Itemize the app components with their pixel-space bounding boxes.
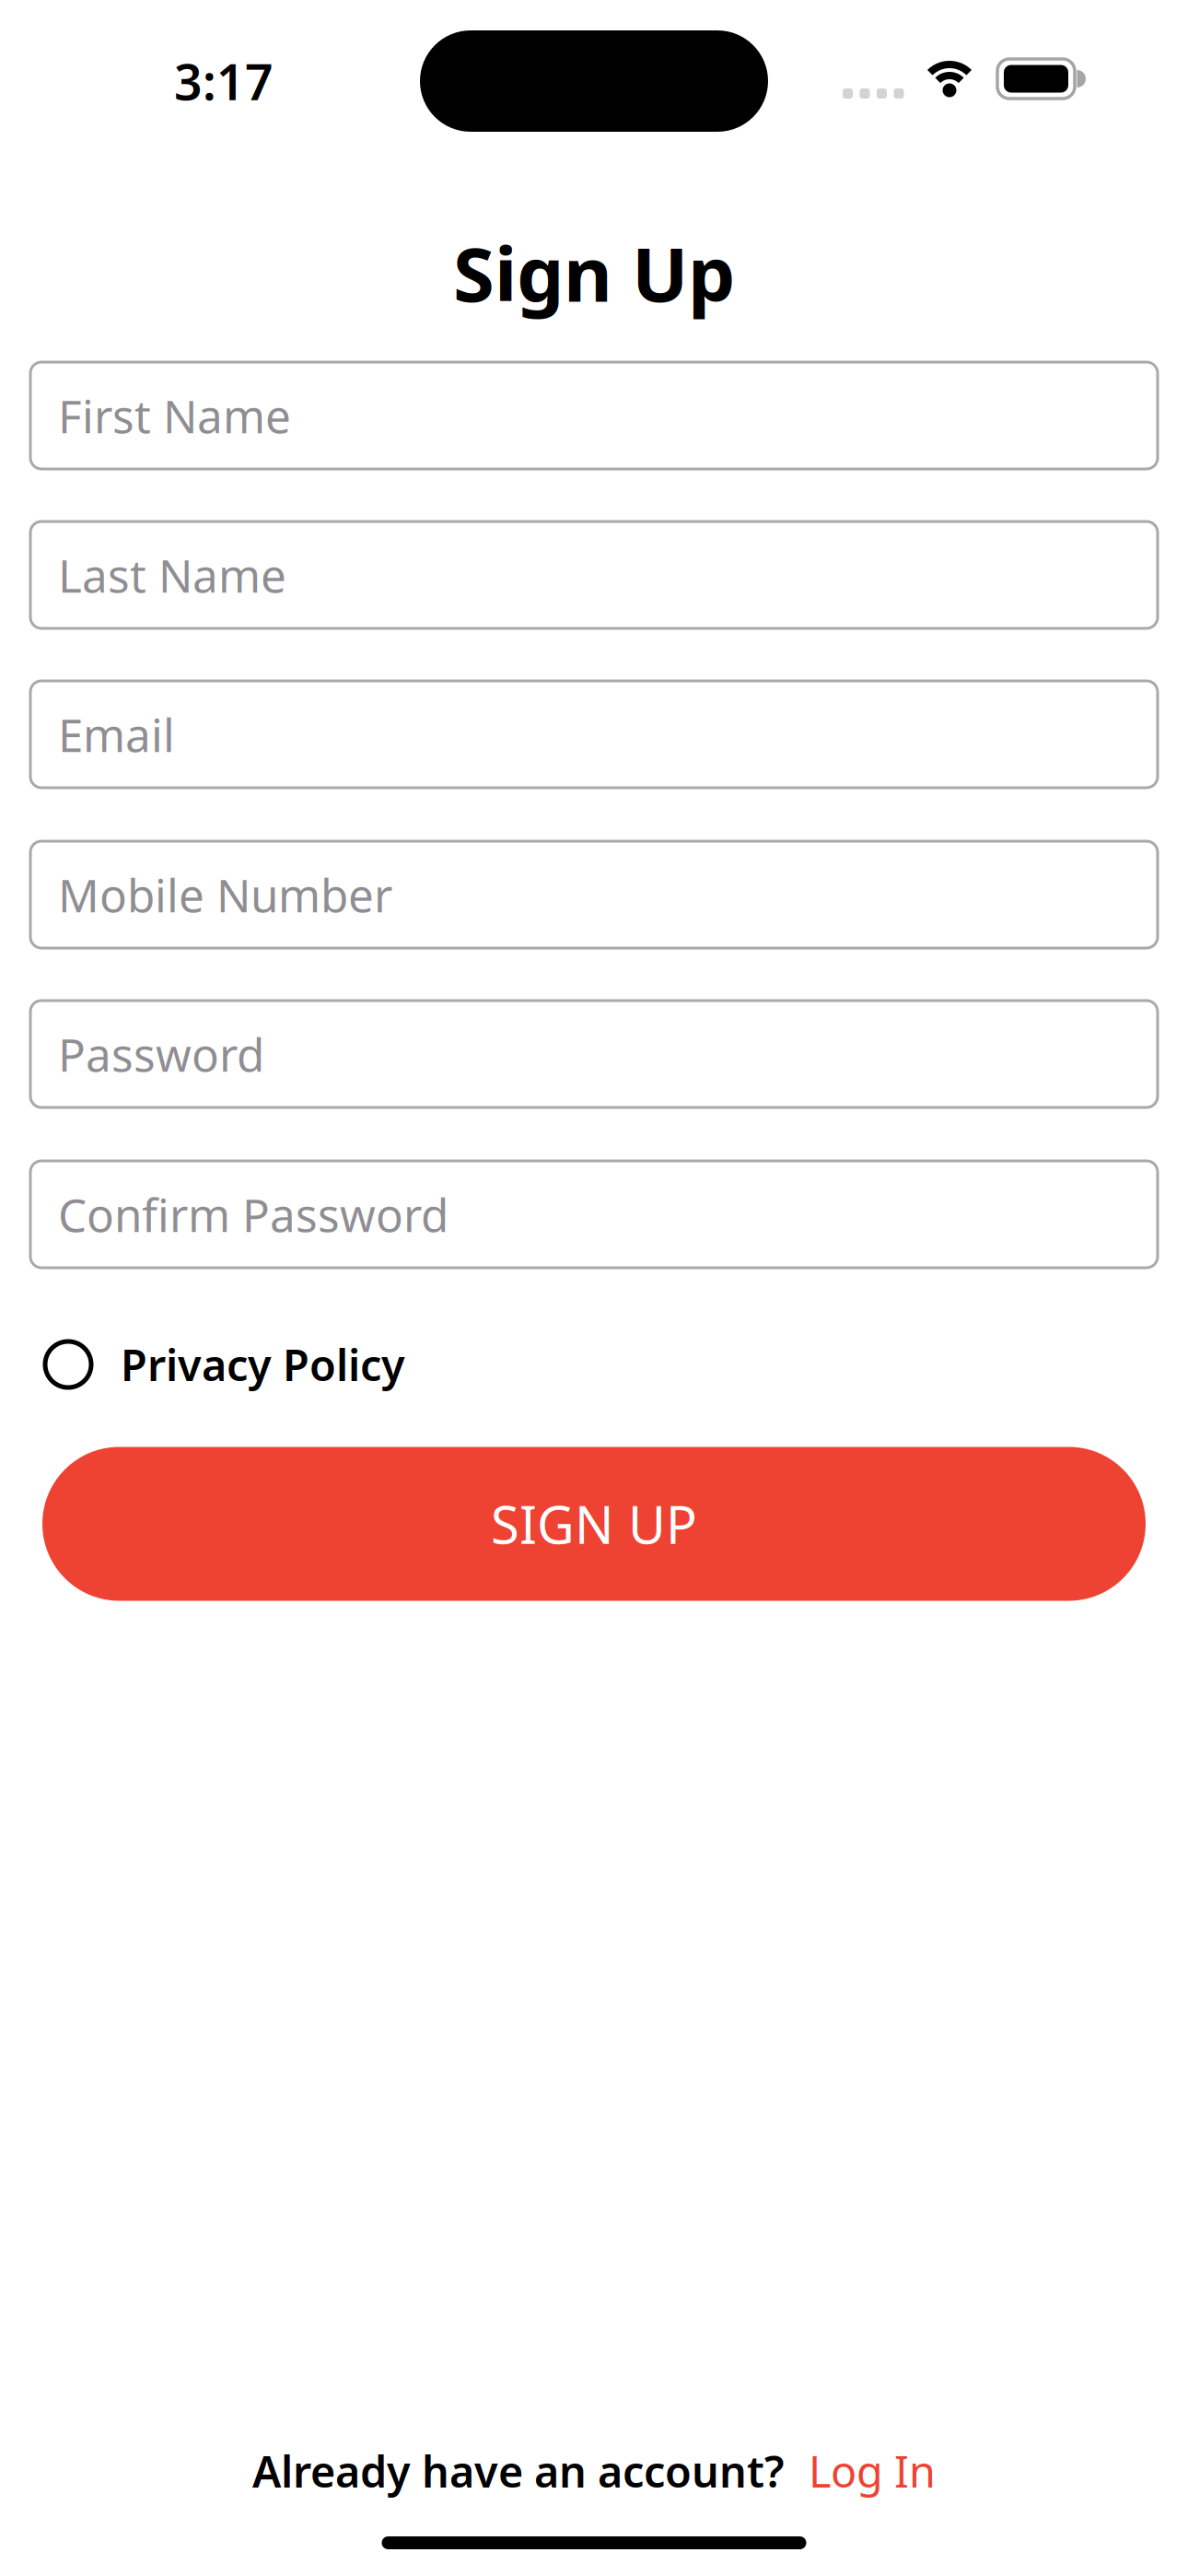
textField[interactable]: Mobile Number bbox=[58, 864, 1158, 925]
staticText: Mobile Number bbox=[58, 864, 392, 925]
staticText: Privacy Policy bbox=[121, 1336, 405, 1393]
staticText: First Name bbox=[58, 385, 291, 446]
staticText: Confirm Password bbox=[58, 1184, 448, 1244]
staticText: SIGN UP bbox=[491, 1490, 697, 1558]
staticText: Password bbox=[58, 1024, 264, 1084]
textField[interactable]: Email bbox=[58, 704, 1158, 764]
staticText: 3:17 bbox=[174, 48, 274, 114]
secureTextField[interactable]: Password bbox=[58, 1024, 1158, 1084]
button[interactable]: SIGN UP bbox=[42, 1447, 1146, 1601]
button[interactable]: Privacy Policy bbox=[30, 1336, 1158, 1393]
staticText: Already have an account? bbox=[252, 2442, 785, 2500]
staticText: Last Name bbox=[58, 545, 286, 605]
textField[interactable]: Last Name bbox=[58, 545, 1158, 605]
staticText: Email bbox=[58, 704, 175, 764]
textField[interactable]: First Name bbox=[58, 385, 1158, 446]
staticText: Sign Up bbox=[453, 223, 735, 322]
button[interactable]: Log In bbox=[809, 2442, 936, 2500]
staticText: Log In bbox=[809, 2442, 936, 2500]
secureTextField[interactable]: Confirm Password bbox=[58, 1184, 1158, 1244]
